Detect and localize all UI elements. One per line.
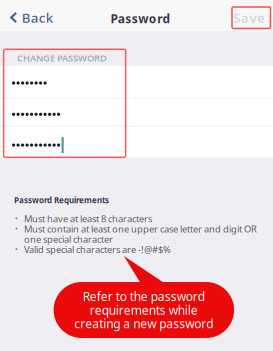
staticText: requirements while xyxy=(90,302,198,318)
button[interactable]: New password xyxy=(0,99,273,126)
staticText: Back xyxy=(22,9,53,26)
staticText: Must have at least 8 characters xyxy=(24,212,152,225)
button[interactable]: Save xyxy=(223,0,273,31)
staticText: • xyxy=(15,224,18,233)
staticText: • xyxy=(15,245,18,254)
staticText: Password Requirements xyxy=(14,195,109,205)
button[interactable]: Back xyxy=(0,0,61,31)
staticText: one special character xyxy=(24,233,113,245)
button[interactable]: Confirm new password xyxy=(0,127,273,158)
button[interactable]: Current password xyxy=(0,66,273,98)
staticText: Save xyxy=(233,9,265,26)
staticText: Refer to the password xyxy=(83,288,205,304)
staticText: creating a new password xyxy=(74,316,213,331)
staticText: Password xyxy=(110,10,171,26)
staticText: CHANGE PASSWORD xyxy=(17,52,107,64)
staticText: Must contain at least one upper case let… xyxy=(24,223,257,235)
staticText: • xyxy=(15,214,18,223)
staticText: Valid special characters are -!@#$% xyxy=(24,243,171,255)
